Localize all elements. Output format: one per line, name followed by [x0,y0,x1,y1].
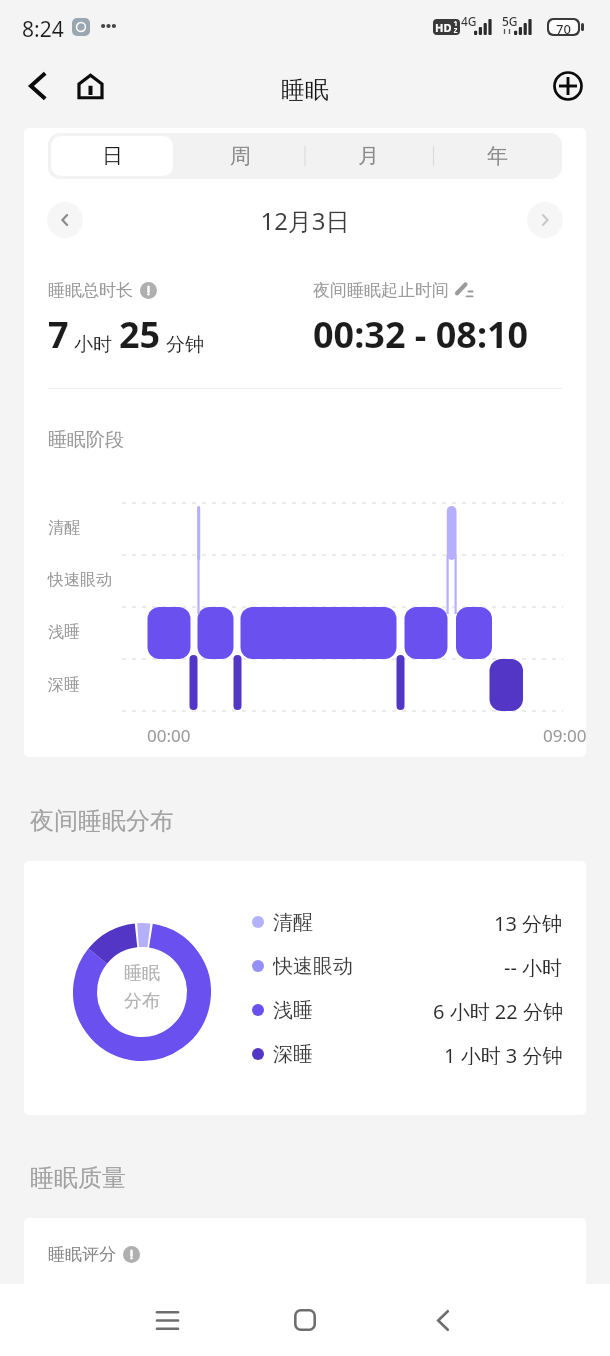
staticText: 浅睡 [273,998,313,1021]
staticText: 睡眠评分 [48,1244,116,1265]
staticText: 70 [556,20,571,34]
button[interactable]: Next day [527,202,563,238]
staticText: 小时 [74,333,112,357]
button[interactable]: Add [546,64,590,108]
button[interactable]: 年 [436,136,559,176]
staticText: -- 小时 [504,954,563,977]
staticText: 睡眠阶段 [48,428,124,452]
staticText: 夜间睡眠起止时间 [313,280,449,301]
staticText: 月 [358,143,379,169]
staticText: 09:00 [543,724,586,747]
button[interactable]: 日 [51,136,173,176]
staticText: 清醒 [273,910,313,933]
staticText: 深睡 [48,675,80,695]
button[interactable]: 清醒 [252,910,563,933]
button[interactable]: 深睡 [252,1042,563,1065]
staticText: HD [435,20,452,35]
staticText: 夜间睡眠分布 [30,806,174,836]
staticText: 年 [487,143,508,169]
staticText: 快速眼动 [48,570,112,590]
button[interactable]: 月 [307,136,430,176]
staticText: 00:00 [147,724,191,747]
staticText: 睡眠 [281,75,329,105]
staticText: 分布 [124,990,160,1013]
staticText: 睡眠 [124,962,160,985]
staticText: 分钟 [166,333,204,357]
staticText: 周 [230,143,251,169]
button[interactable]: 快速眼动 [252,954,563,977]
staticText: 快速眼动 [273,954,353,977]
button[interactable]: Previous day [47,202,83,238]
staticText: 清醒 [48,518,80,538]
staticText: 00:32 - 08:10 [313,310,529,359]
button[interactable]: 浅睡 [252,998,563,1021]
staticText: 6 小时 22 分钟 [433,998,563,1021]
button[interactable]: 周 [179,136,301,176]
button[interactable]: Back [15,64,59,108]
staticText: 12月3日 [83,204,527,237]
staticText: 25 [119,310,161,359]
staticText: 日 [102,143,123,169]
button[interactable]: Recent apps [135,1288,199,1352]
button[interactable]: Home [273,1288,337,1352]
staticText: 5G [502,13,518,29]
staticText: 7 [48,310,69,359]
staticText: 睡眠质量 [30,1163,126,1193]
staticText: 8:24 [22,15,64,44]
staticText: 13 分钟 [494,910,563,933]
staticText: 4G [461,13,477,29]
staticText: 深睡 [273,1042,313,1065]
staticText: 浅睡 [48,622,80,642]
staticText: 1 小时 3 分钟 [444,1042,563,1065]
button[interactable]: Home [68,64,112,108]
staticText: 睡眠总时长 [48,280,133,301]
button[interactable]: Back [411,1288,475,1352]
